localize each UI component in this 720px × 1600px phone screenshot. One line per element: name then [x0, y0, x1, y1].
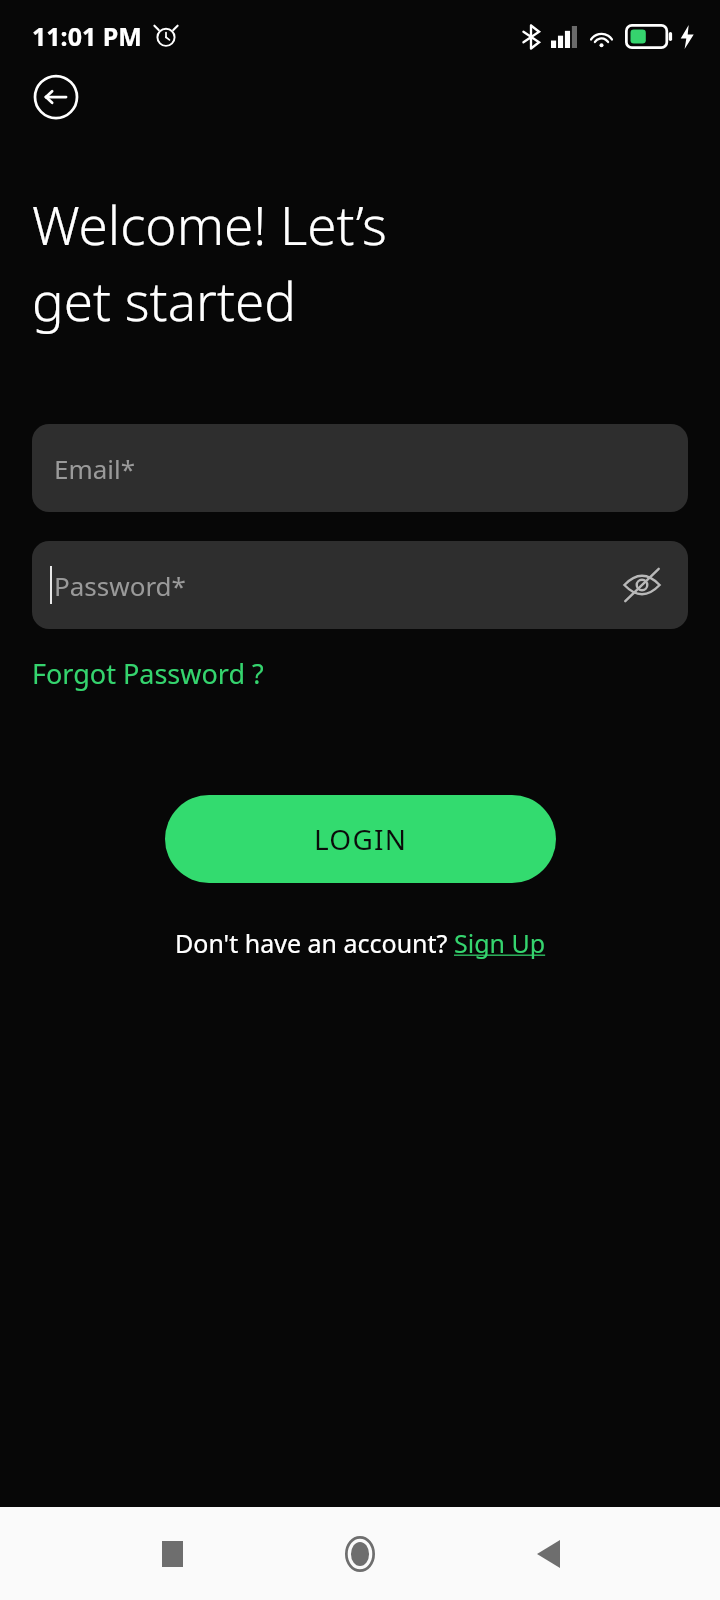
button[interactable]: Back: [526, 1532, 570, 1576]
staticText: Welcome! Let’s get started: [32, 188, 387, 336]
staticText: Password*: [54, 568, 186, 603]
staticText: Sign Up: [454, 926, 546, 960]
staticText: Email*: [54, 451, 136, 486]
button[interactable]: Password*: [32, 541, 688, 629]
staticText: Forgot Password ?: [32, 655, 264, 692]
staticText: 11:01 PM: [32, 19, 142, 53]
staticText: LOGIN: [314, 820, 408, 858]
button[interactable]: Sign Up: [454, 926, 546, 960]
button[interactable]: Forgot Password ?: [32, 651, 264, 696]
button[interactable]: Back: [31, 72, 81, 122]
staticText: Don't have an account?: [175, 926, 454, 960]
button[interactable]: LOGIN: [165, 795, 556, 883]
button[interactable]: Email*: [32, 424, 688, 512]
button[interactable]: Recents: [150, 1532, 194, 1576]
button[interactable]: Show password: [620, 563, 664, 607]
button[interactable]: Home: [338, 1532, 382, 1576]
